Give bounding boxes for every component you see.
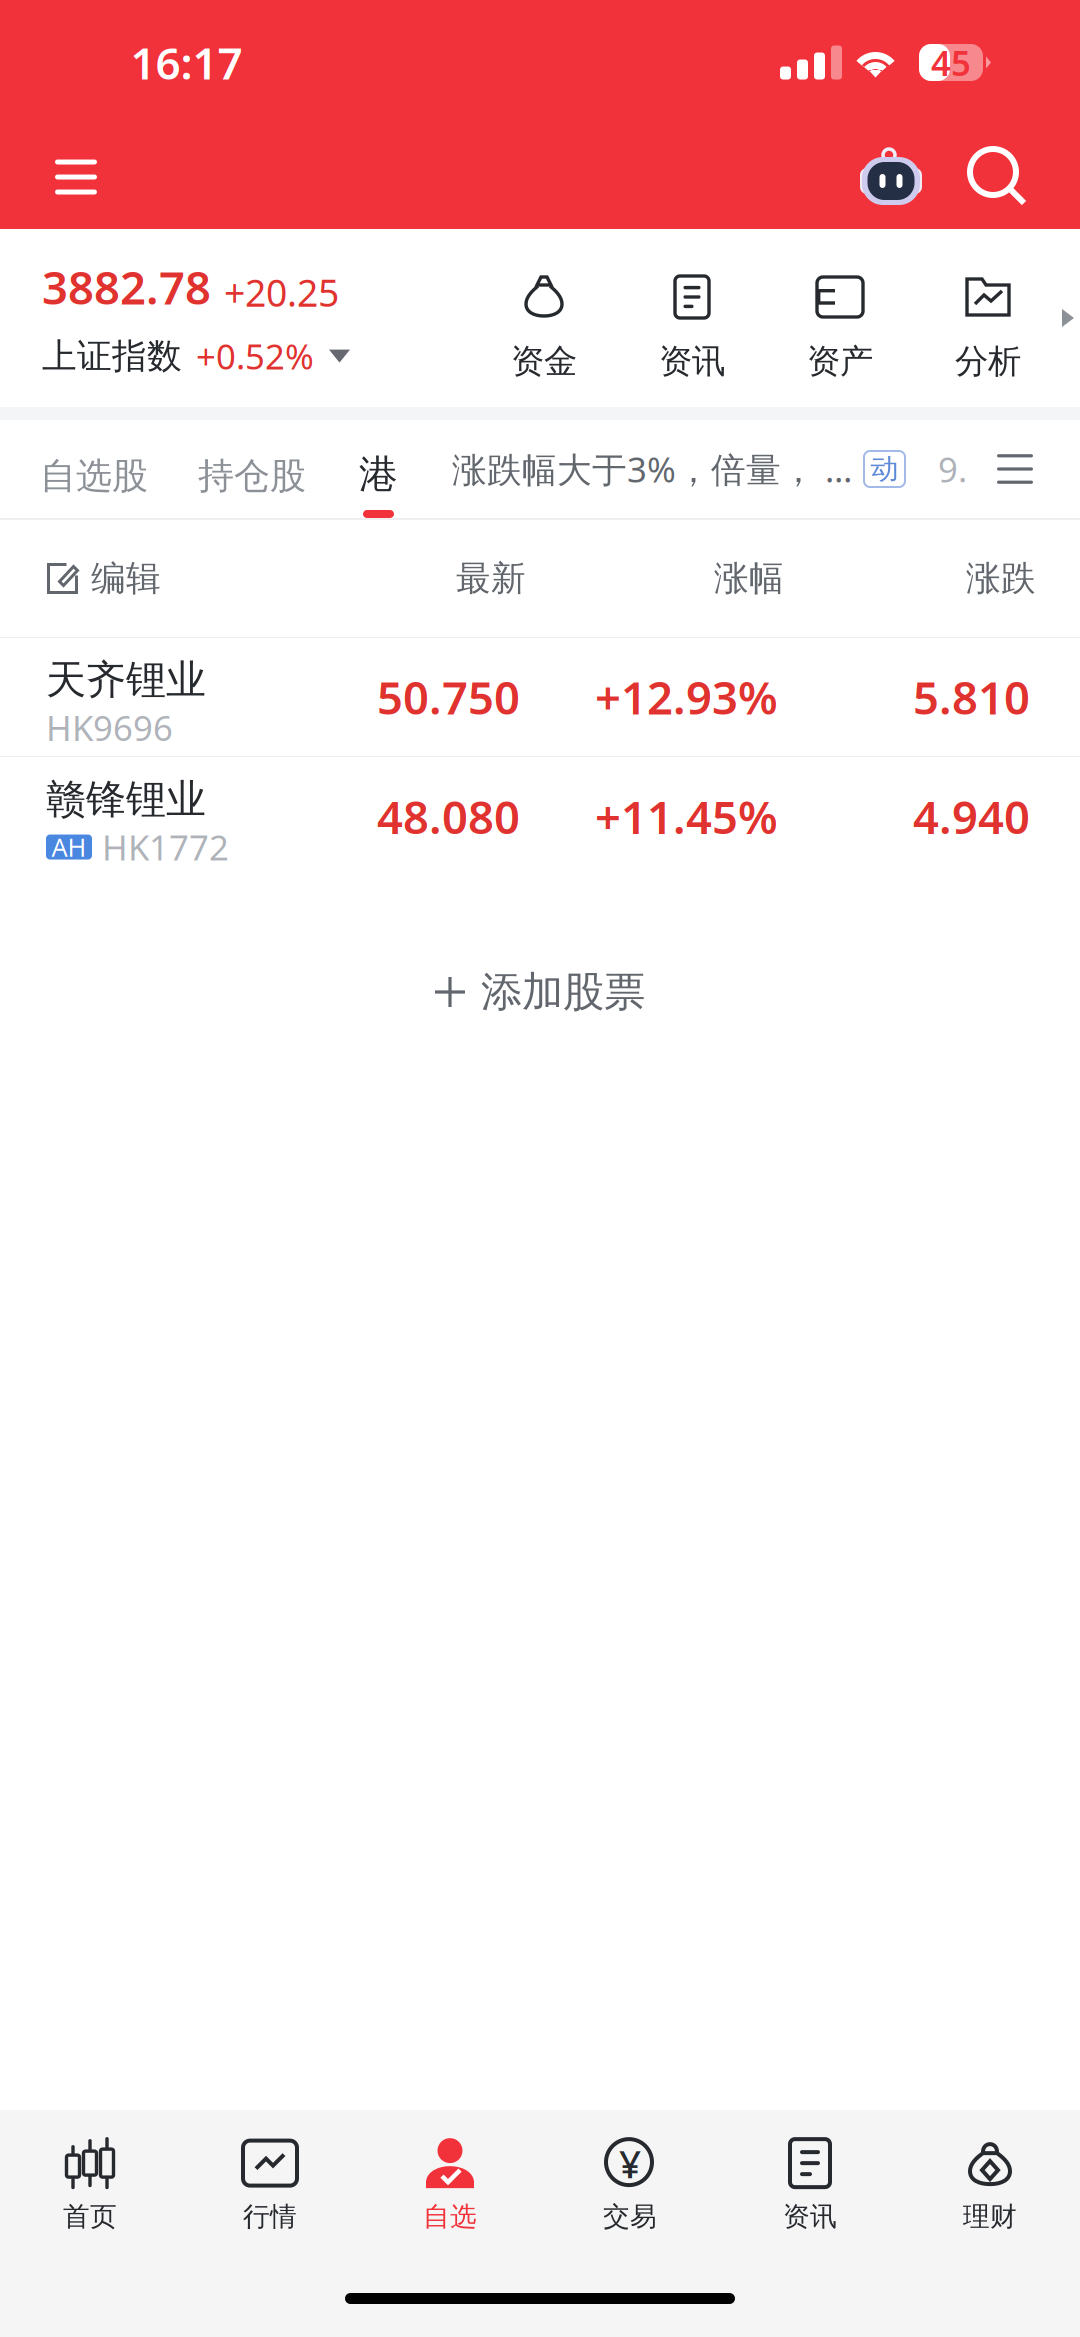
button[interactable]: 首页 bbox=[0, 2120, 180, 2250]
button[interactable]: 自选股 bbox=[40, 420, 148, 518]
button[interactable]: 资讯 bbox=[720, 2120, 900, 2250]
button[interactable]: 理财 bbox=[900, 2120, 1080, 2250]
button[interactable]: 涨跌幅大于3%，倍量， … bbox=[452, 420, 905, 518]
staticText: 9. bbox=[938, 446, 967, 492]
staticText: 资金 bbox=[511, 341, 577, 382]
staticText: 动 bbox=[870, 452, 898, 486]
staticText: 理财 bbox=[963, 2200, 1017, 2233]
staticText: 资讯 bbox=[659, 341, 725, 382]
button[interactable]: ¥ bbox=[540, 2120, 720, 2250]
button[interactable]: 分析 bbox=[914, 229, 1062, 407]
staticText: 行情 bbox=[243, 2200, 297, 2233]
staticText: 最新 bbox=[456, 557, 526, 600]
staticText: 5.810 bbox=[913, 667, 1030, 727]
button[interactable]: 持仓股 bbox=[198, 420, 306, 518]
button[interactable]: 天齐锂业 bbox=[0, 638, 1080, 757]
staticText: 首页 bbox=[63, 2200, 117, 2233]
button[interactable]: Menu bbox=[41, 145, 111, 209]
button[interactable]: 编辑 bbox=[46, 557, 161, 600]
button[interactable]: 资产 bbox=[766, 229, 914, 407]
staticText: 16:17 bbox=[130, 33, 242, 92]
staticText: 45 bbox=[931, 39, 971, 85]
staticText: HK1772 bbox=[102, 824, 229, 870]
staticText: 50.750 bbox=[377, 667, 520, 727]
staticText: +0.52% bbox=[196, 333, 314, 379]
button[interactable]: 3882.78 bbox=[0, 229, 470, 407]
staticText: 上证指数 bbox=[42, 335, 182, 377]
staticText: 添加股票 bbox=[481, 967, 645, 1017]
staticText: 编辑 bbox=[91, 557, 161, 600]
button[interactable]: 赣锋锂业 bbox=[0, 757, 1080, 876]
staticText: 持仓股 bbox=[198, 454, 306, 498]
button[interactable]: 资讯 bbox=[618, 229, 766, 407]
staticText: HK9696 bbox=[46, 704, 173, 750]
button[interactable]: 港 bbox=[359, 420, 398, 518]
staticText: +20.25 bbox=[224, 267, 339, 317]
staticText: 天齐锂业 bbox=[46, 655, 206, 704]
staticText: 分析 bbox=[955, 341, 1021, 382]
staticText: 自选 bbox=[423, 2200, 477, 2233]
staticText: 涨跌 bbox=[966, 557, 1036, 600]
staticText: 3882.78 bbox=[42, 257, 211, 317]
staticText: 资讯 bbox=[783, 2200, 837, 2233]
staticText: 涨幅 bbox=[714, 557, 784, 600]
button[interactable]: 资金 bbox=[470, 229, 618, 407]
staticText: 4.940 bbox=[913, 786, 1030, 847]
staticText: ¥ bbox=[619, 2137, 641, 2189]
button[interactable]: Search bbox=[967, 146, 1029, 208]
staticText: 48.080 bbox=[377, 786, 520, 847]
staticText: 港 bbox=[359, 450, 398, 498]
staticText: 交易 bbox=[603, 2200, 657, 2233]
staticText: 自选股 bbox=[40, 454, 148, 498]
staticText: 赣锋锂业 bbox=[46, 775, 206, 824]
staticText: +12.93% bbox=[595, 667, 778, 727]
staticText: AH bbox=[51, 830, 86, 864]
button[interactable]: 自选 bbox=[360, 2120, 540, 2250]
button[interactable]: 添加股票 bbox=[0, 876, 1080, 1108]
button[interactable]: Manage groups bbox=[993, 420, 1037, 518]
button[interactable]: AI assistant bbox=[860, 146, 922, 208]
staticText: 涨跌幅大于3%，倍量， … bbox=[452, 446, 852, 492]
staticText: 资产 bbox=[807, 341, 873, 382]
button[interactable]: 行情 bbox=[180, 2120, 360, 2250]
staticText: +11.45% bbox=[595, 786, 778, 847]
